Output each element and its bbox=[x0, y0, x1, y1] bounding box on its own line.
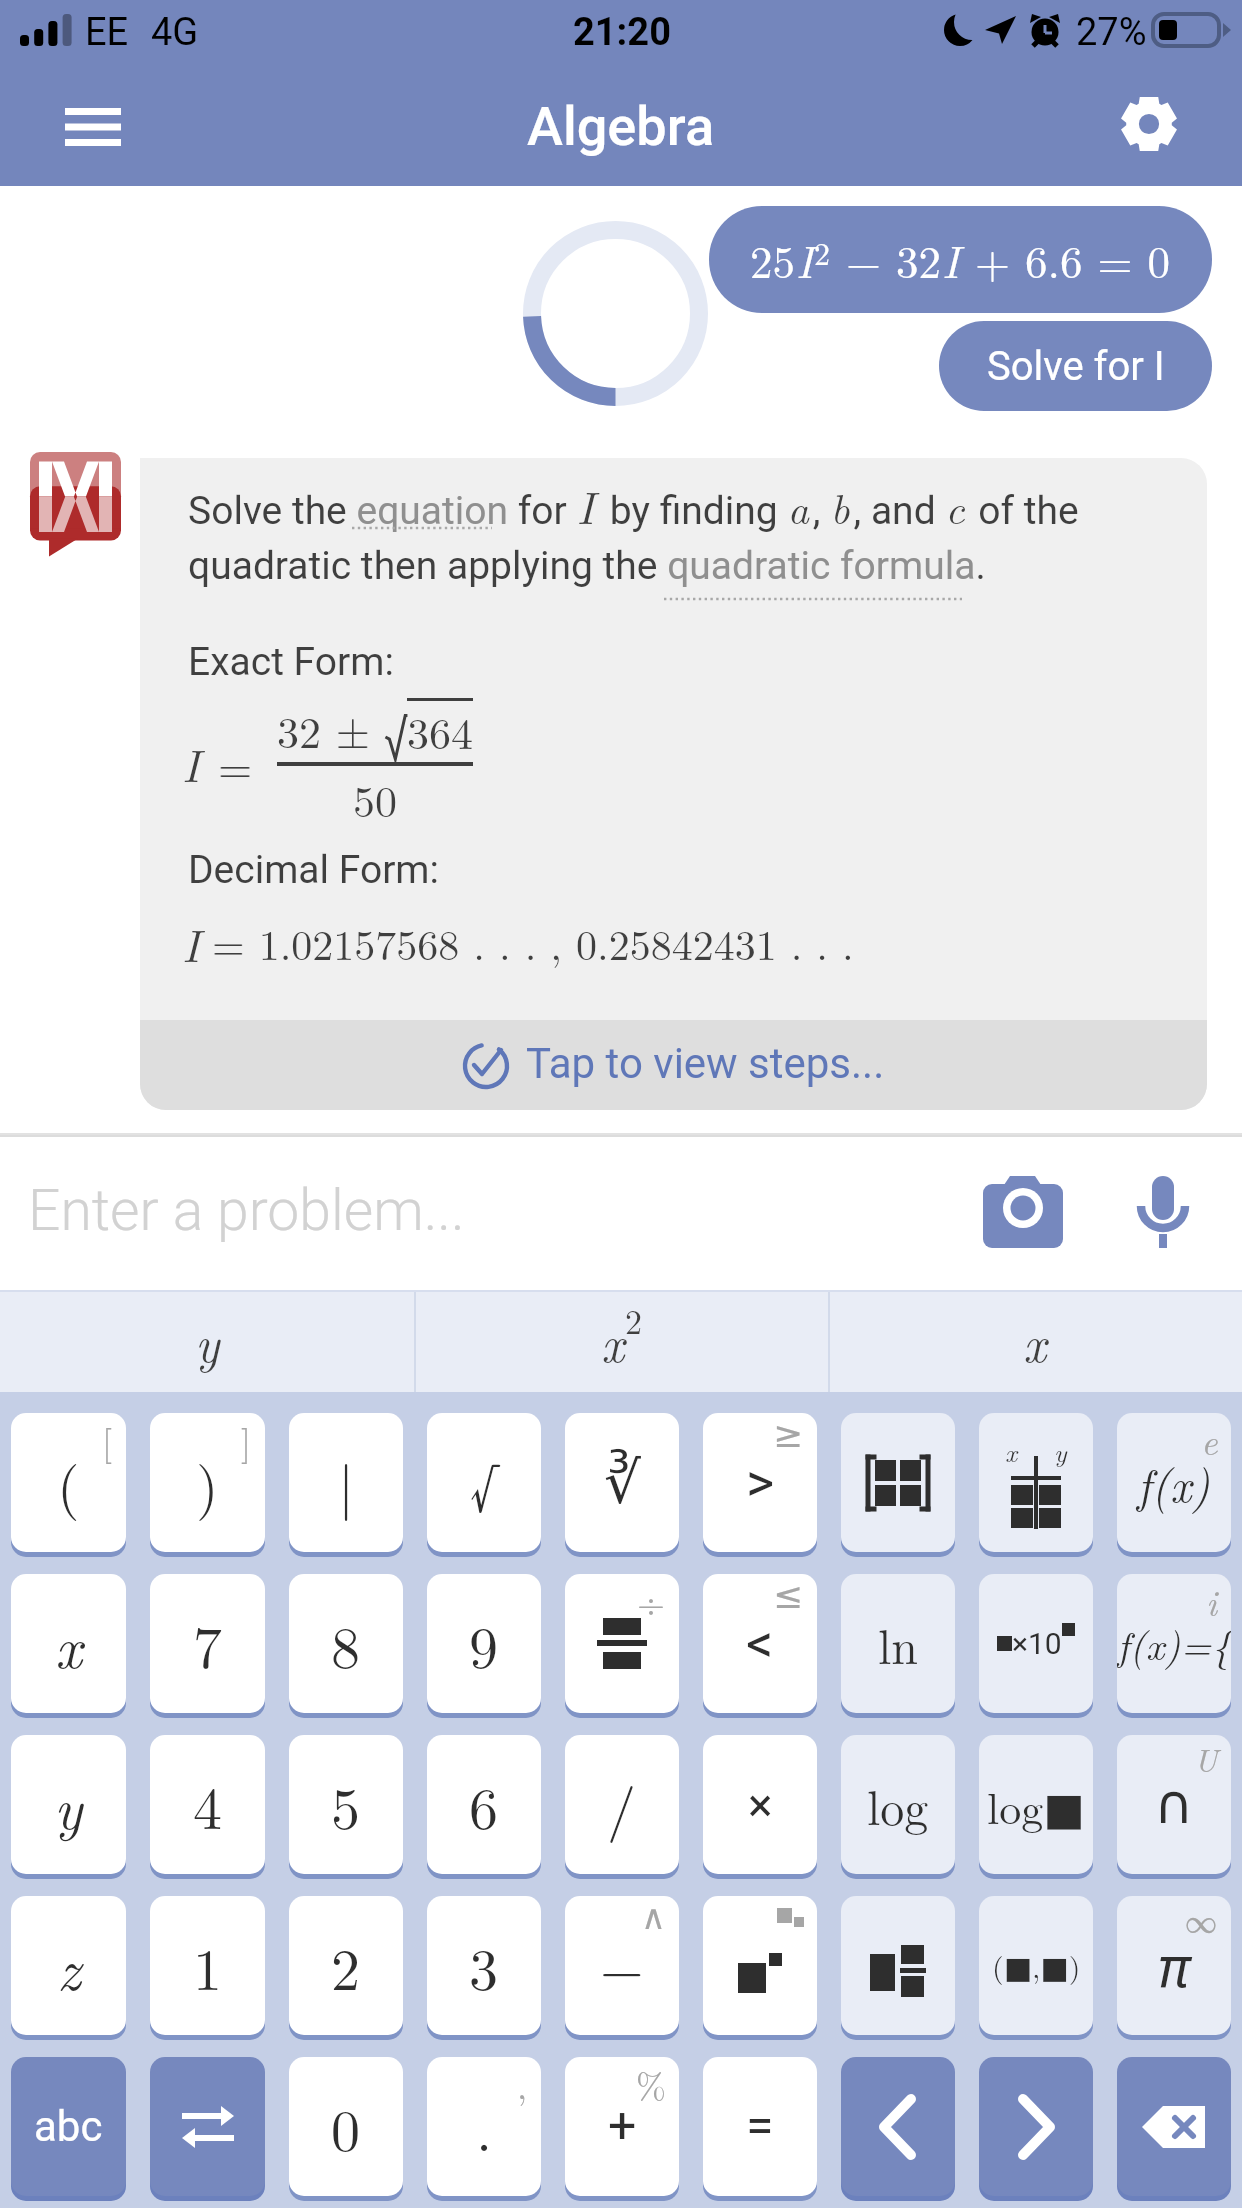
button[interactable]: ] bbox=[150, 1413, 265, 1552]
staticText: ∧ bbox=[641, 1897, 666, 1937]
staticText: / bbox=[607, 1764, 637, 1846]
staticText: > bbox=[746, 1451, 775, 1514]
staticText: 3 bbox=[469, 1925, 499, 2007]
button[interactable]: (■,■) bbox=[979, 1896, 1093, 2035]
staticText: % bbox=[636, 2058, 666, 2109]
button[interactable]: 25 bbox=[709, 206, 1212, 313]
staticText: 50 bbox=[353, 767, 397, 829]
button[interactable]: 7 bbox=[150, 1574, 265, 1713]
staticText: I bbox=[182, 730, 200, 795]
staticText: Solve the equation for I by finding a, b… bbox=[188, 472, 1079, 537]
staticText: I bbox=[796, 227, 814, 291]
staticText: f(x) bbox=[1137, 1450, 1211, 1515]
button[interactable]: 1 bbox=[150, 1896, 265, 2035]
staticText: 4G bbox=[151, 10, 199, 55]
staticText: abc bbox=[34, 2102, 103, 2151]
button[interactable]: Matrix bbox=[841, 1413, 955, 1552]
button[interactable]: Settings bbox=[1055, 68, 1242, 186]
staticText: ln bbox=[878, 1610, 919, 1678]
staticText: EE bbox=[85, 10, 129, 55]
staticText: i bbox=[1206, 1575, 1218, 1626]
button[interactable]: 6 bbox=[427, 1735, 541, 1874]
staticText: . bbox=[476, 2086, 493, 2168]
button[interactable]: Backspace bbox=[1117, 2057, 1231, 2196]
button[interactable]: ln bbox=[841, 1574, 955, 1713]
staticText: 6 bbox=[469, 1764, 499, 1846]
button[interactable]: ∛ bbox=[565, 1413, 679, 1552]
staticText: π bbox=[1158, 1929, 1190, 2003]
staticText: y bbox=[1054, 1433, 1067, 1470]
staticText: 364 bbox=[407, 699, 473, 761]
button[interactable]: ∞ bbox=[1117, 1896, 1231, 2035]
button[interactable]: 9 bbox=[427, 1574, 541, 1713]
staticText: ≥ bbox=[773, 1414, 804, 1456]
staticText: + 6.6 = 0 bbox=[960, 227, 1171, 291]
button[interactable]: Move right bbox=[979, 2057, 1093, 2196]
button[interactable]: U bbox=[1117, 1735, 1231, 1874]
button[interactable]: , bbox=[427, 2057, 541, 2196]
button[interactable]: x bbox=[11, 1574, 126, 1713]
staticText: log■ bbox=[987, 1774, 1085, 1836]
staticText: z bbox=[57, 1925, 81, 2007]
staticText: Exact Form: bbox=[188, 639, 394, 685]
button[interactable]: 8 bbox=[289, 1574, 403, 1713]
button[interactable]: Menu bbox=[0, 68, 186, 186]
button[interactable]: × bbox=[703, 1735, 817, 1874]
button[interactable]: e bbox=[1117, 1413, 1231, 1552]
button[interactable]: = bbox=[703, 2057, 817, 2196]
button[interactable]: 3 bbox=[427, 1896, 541, 2035]
button[interactable]: Solve for I bbox=[939, 321, 1212, 411]
button[interactable]: Scientific notation bbox=[979, 1574, 1093, 1713]
button[interactable]: Voice input bbox=[1103, 1136, 1223, 1288]
staticText: 4 bbox=[193, 1764, 223, 1846]
button[interactable]: Switch keyboard bbox=[150, 2057, 265, 2196]
button[interactable]: x bbox=[828, 1290, 1242, 1392]
button[interactable]: 2 bbox=[289, 1896, 403, 2035]
staticText: 2 bbox=[814, 229, 831, 274]
button[interactable]: Fraction bbox=[565, 1574, 679, 1713]
button[interactable]: Mixed fraction bbox=[841, 1896, 955, 2035]
staticText: y bbox=[54, 1764, 83, 1846]
staticText: 32 ± bbox=[277, 698, 385, 760]
button[interactable]: y bbox=[11, 1735, 126, 1874]
staticText: 2 bbox=[331, 1925, 361, 2007]
button[interactable]: z bbox=[11, 1896, 126, 2035]
staticText: x bbox=[601, 1306, 625, 1377]
staticText: f(x)={ bbox=[1117, 1615, 1231, 1672]
button[interactable]: ≥ bbox=[703, 1413, 817, 1552]
button[interactable]: Power bbox=[703, 1896, 817, 2035]
staticText: ∛ bbox=[604, 1449, 641, 1517]
button[interactable]: Tap to view steps... bbox=[140, 1020, 1207, 1110]
button[interactable]: i bbox=[1117, 1574, 1231, 1713]
button[interactable]: Move left bbox=[841, 2057, 955, 2196]
staticText: I bbox=[182, 910, 200, 975]
staticText: ≤ bbox=[773, 1575, 804, 1617]
button[interactable]: log bbox=[841, 1735, 955, 1874]
button[interactable]: 0 bbox=[289, 2057, 403, 2196]
button[interactable]: / bbox=[565, 1735, 679, 1874]
button[interactable]: 4 bbox=[150, 1735, 265, 1874]
button[interactable]: 5 bbox=[289, 1735, 403, 1874]
staticText: = 1.02157568 . . . , 0.25842431 . . . bbox=[212, 913, 854, 973]
staticText: ÷ bbox=[637, 1575, 666, 1626]
button[interactable]: [ bbox=[11, 1413, 126, 1552]
button[interactable]: y bbox=[0, 1290, 414, 1392]
button[interactable]: ∧ bbox=[565, 1896, 679, 2035]
staticText: = bbox=[746, 2097, 774, 2156]
button[interactable]: % bbox=[565, 2057, 679, 2196]
button[interactable]: x bbox=[414, 1290, 828, 1392]
staticText: ] bbox=[241, 1414, 252, 1465]
staticText: , bbox=[517, 2058, 528, 2109]
staticText: Solve for I bbox=[987, 343, 1165, 390]
button[interactable]: Table bbox=[979, 1413, 1093, 1552]
button[interactable]: log■ bbox=[979, 1735, 1093, 1874]
button[interactable]: ≤ bbox=[703, 1574, 817, 1713]
button[interactable]: | bbox=[289, 1413, 403, 1552]
button[interactable]: √ bbox=[427, 1413, 541, 1552]
button[interactable]: abc bbox=[11, 2057, 126, 2196]
staticText: × bbox=[748, 1778, 773, 1832]
staticText: log bbox=[867, 1771, 929, 1839]
staticText: Tap to view steps... bbox=[526, 1039, 885, 1088]
button[interactable]: Camera bbox=[963, 1136, 1083, 1288]
staticText: 9 bbox=[469, 1603, 499, 1685]
